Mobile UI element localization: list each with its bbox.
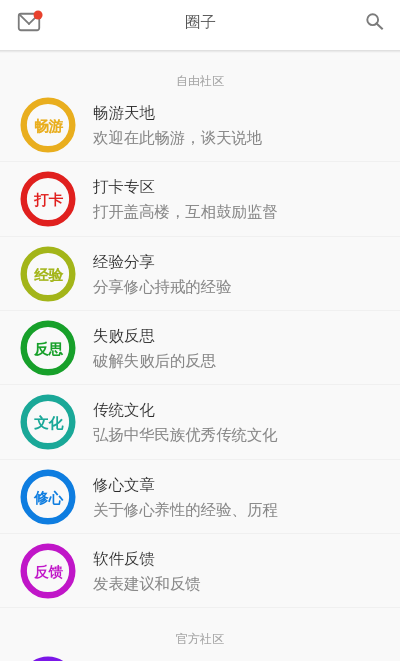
staticText: 失败反思: [93, 326, 155, 346]
button[interactable]: 畅游: [0, 89, 400, 161]
staticText: 文化: [34, 414, 63, 432]
staticText: 自由社区: [176, 73, 224, 88]
button[interactable]: Search: [351, 1, 392, 42]
staticText: 畅游天地: [93, 103, 155, 123]
staticText: 修心文章: [93, 475, 155, 495]
staticText: 欢迎在此畅游，谈天说地: [93, 128, 263, 147]
button[interactable]: 文化: [0, 385, 400, 459]
staticText: 打开盖高楼，互相鼓励监督: [93, 202, 278, 221]
button[interactable]: 修心: [0, 460, 400, 533]
staticText: 畅游: [34, 117, 63, 135]
staticText: 传统文化: [93, 400, 155, 420]
staticText: 修心: [34, 489, 63, 507]
button[interactable]: 经验: [0, 237, 400, 310]
staticText: 打卡: [34, 191, 63, 209]
staticText: 反馈: [34, 563, 63, 581]
staticText: 打卡专区: [93, 177, 155, 197]
staticText: 发表建议和反馈: [93, 574, 201, 593]
staticText: 关于修心养性的经验、历程: [93, 500, 278, 519]
button[interactable]: 打卡: [0, 162, 400, 236]
staticText: 反思: [34, 340, 63, 358]
staticText: 分享修心持戒的经验: [93, 277, 232, 296]
staticText: 圈子: [185, 12, 216, 32]
staticText: 弘扬中华民族优秀传统文化: [93, 425, 278, 444]
button[interactable]: Messages: [8, 1, 49, 42]
staticText: 软件反馈: [93, 549, 155, 569]
button[interactable]: 反思: [0, 311, 400, 384]
button[interactable]: 反馈: [0, 534, 400, 607]
button[interactable]: 官方: [0, 647, 400, 661]
staticText: 破解失败后的反思: [93, 351, 217, 370]
staticText: 经验: [34, 266, 63, 284]
staticText: 经验分享: [93, 252, 155, 272]
staticText: 官方社区: [176, 631, 224, 646]
